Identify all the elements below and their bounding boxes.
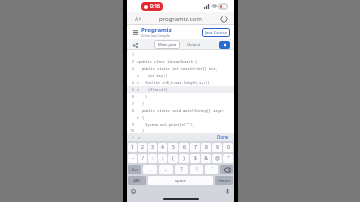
button[interactable]: Dictate <box>224 188 231 195</box>
staticText: public static void main(String[] args) <box>142 108 224 113</box>
staticText: 8 <box>132 108 135 113</box>
staticText: 8 <box>205 144 208 151</box>
staticText: 0 <box>227 144 230 151</box>
staticText: 5 <box>172 144 175 151</box>
staticText: ) <box>183 155 185 162</box>
staticText: 3 <box>132 66 135 71</box>
staticText: ! <box>196 166 198 173</box>
button[interactable]: 8 <box>201 143 211 152</box>
staticText: 5 <box>132 87 135 92</box>
button[interactable]: ) <box>179 154 189 163</box>
staticText: System.out.println(""); <box>145 122 195 127</box>
button[interactable]: Menu <box>131 28 139 36</box>
staticText: ' <box>211 166 213 173</box>
button[interactable]: Reload <box>219 14 229 24</box>
button[interactable]: 1 <box>128 143 137 152</box>
staticText: } <box>145 94 148 99</box>
button[interactable]: 6 <box>179 143 189 152</box>
staticText: 0:16 <box>150 3 160 10</box>
button[interactable]: Backspace <box>220 165 233 174</box>
staticText: ▾ <box>137 88 139 91</box>
staticText: / <box>142 155 144 162</box>
button[interactable]: 4 <box>158 143 167 152</box>
staticText: { <box>142 115 145 120</box>
button[interactable]: Main.java <box>154 40 180 49</box>
staticText: ▾ <box>137 74 139 77</box>
button[interactable]: ABC <box>128 176 146 185</box>
button[interactable]: ' <box>205 165 218 174</box>
staticText: public class linearSearch { <box>139 59 198 64</box>
button[interactable]: Run <box>219 41 230 49</box>
staticText: : <box>152 155 154 162</box>
button[interactable]: ( <box>168 154 178 163</box>
staticText: Output <box>187 42 201 47</box>
staticText: ▾ <box>137 116 139 119</box>
staticText: for(int i=0;i<arr.length;i++){ <box>145 80 210 85</box>
staticText: ; <box>162 155 164 162</box>
button[interactable]: Output <box>184 40 204 49</box>
button[interactable]: Done <box>215 134 231 140</box>
button[interactable]: 9 <box>212 143 222 152</box>
button[interactable]: space <box>148 176 213 185</box>
button[interactable]: , <box>159 165 173 174</box>
staticText: 1 <box>131 144 134 151</box>
staticText: ▾ <box>137 81 139 84</box>
staticText: programiz.com <box>159 15 202 23</box>
button[interactable]: : <box>148 154 157 163</box>
button[interactable]: 5 <box>168 143 178 152</box>
staticText: #+= <box>131 167 139 172</box>
staticText: 9 <box>132 122 135 127</box>
button[interactable]: @ <box>212 154 222 163</box>
staticText: " <box>227 155 230 162</box>
button[interactable]: $ <box>190 154 200 163</box>
staticText: Main.java <box>158 42 176 47</box>
staticText: & <box>204 155 208 162</box>
staticText: ? <box>180 166 183 173</box>
staticText: Java Course <box>205 30 227 35</box>
button[interactable]: Java Course <box>202 28 230 37</box>
staticText: . <box>149 166 151 173</box>
button[interactable]: 3 <box>148 143 157 152</box>
button[interactable]: Text size <box>132 14 142 24</box>
staticText: } <box>142 128 145 133</box>
staticText: 2 <box>141 144 144 151</box>
staticText: Online Java Compiler <box>141 34 171 38</box>
button[interactable]: Emoji <box>130 188 137 195</box>
staticText: 7 <box>132 101 135 106</box>
button[interactable]: . <box>143 165 157 174</box>
button[interactable]: / <box>138 154 147 163</box>
staticText: 1 <box>132 52 135 57</box>
button[interactable]: 0 <box>223 143 233 152</box>
staticText: space <box>175 178 186 183</box>
staticText: if(a==i){ <box>148 87 168 92</box>
staticText: Done <box>217 134 229 140</box>
button[interactable]: Next <box>136 134 142 140</box>
button[interactable]: " <box>223 154 233 163</box>
button[interactable]: Share <box>131 41 139 49</box>
staticText: 7 <box>194 144 197 151</box>
staticText: } <box>142 101 145 106</box>
staticText: 9 <box>216 144 219 151</box>
staticText: v <box>138 135 141 140</box>
button[interactable]: - <box>128 154 137 163</box>
staticText: 4 <box>161 144 164 151</box>
staticText: 4 <box>132 80 135 85</box>
button[interactable]: #+= <box>128 165 141 174</box>
button[interactable]: ? <box>175 165 188 174</box>
staticText: Programiz <box>141 26 172 34</box>
button[interactable]: ; <box>158 154 167 163</box>
staticText: 6 <box>132 94 135 99</box>
staticText: 6 <box>183 144 186 151</box>
button[interactable]: Previous <box>130 134 136 140</box>
staticText: ▾ <box>137 60 139 63</box>
staticText: 10 <box>130 128 135 133</box>
button[interactable]: & <box>201 154 211 163</box>
button[interactable]: 2 <box>138 143 147 152</box>
staticText: - <box>132 155 134 162</box>
staticText: A <box>135 16 139 23</box>
button[interactable]: return <box>215 176 233 185</box>
staticText: ABC <box>133 178 141 183</box>
button[interactable]: 0:16 <box>141 2 163 11</box>
button[interactable]: 7 <box>190 143 200 152</box>
button[interactable]: ! <box>190 165 203 174</box>
